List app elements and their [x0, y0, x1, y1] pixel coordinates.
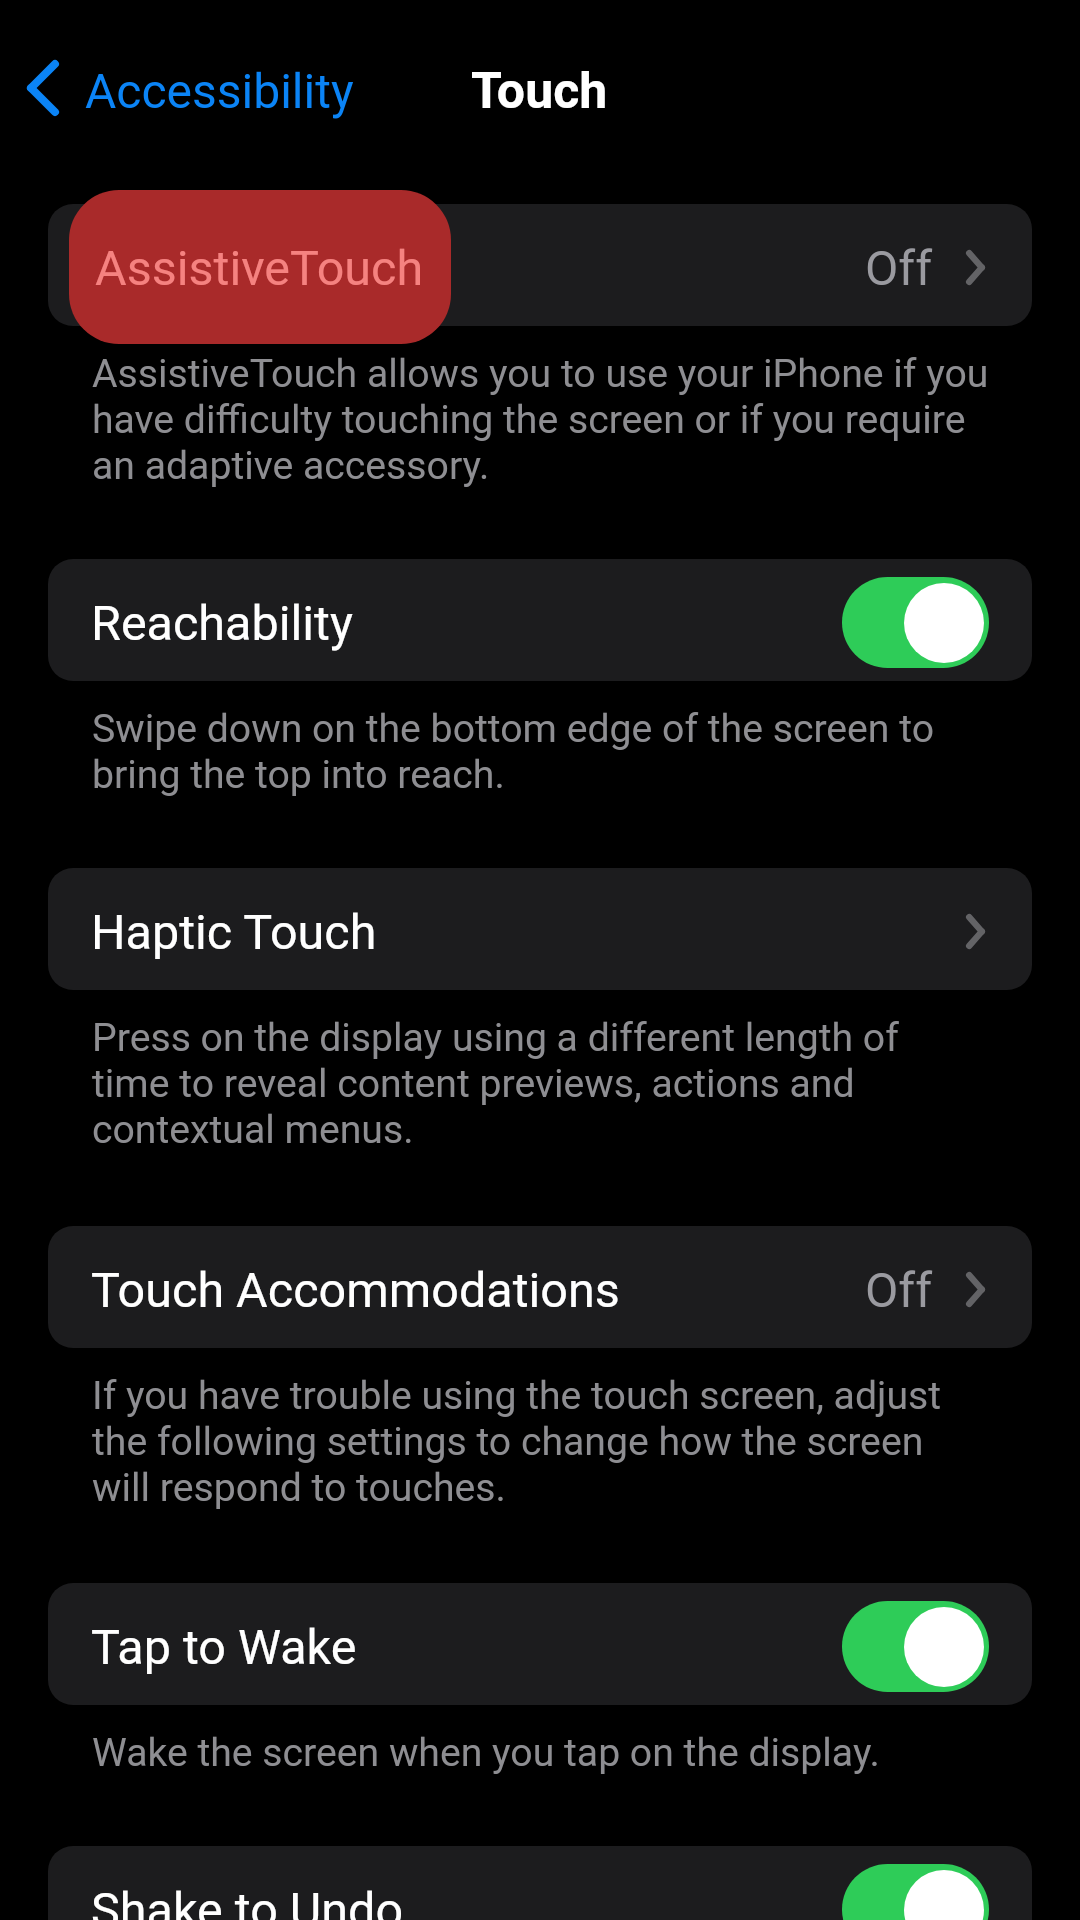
staticText: Reachability: [91, 595, 353, 652]
staticText: Touch: [471, 62, 608, 121]
button[interactable]: Shake to Undo: [48, 1846, 1032, 1920]
staticText: Swipe down on the bottom edge of the scr…: [92, 706, 935, 798]
staticText: Shake to Undo: [91, 1882, 404, 1920]
staticText: AssistiveTouch: [91, 240, 420, 297]
staticText: If you have trouble using the touch scre…: [92, 1373, 942, 1511]
staticText: Wake the screen when you tap on the disp…: [92, 1730, 880, 1776]
staticText: AssistiveTouch: [95, 240, 424, 297]
staticText: AssistiveTouch allows you to use your iP…: [92, 351, 989, 489]
button[interactable]: AssistiveTouch: [48, 204, 1032, 326]
staticText: Tap to Wake: [91, 1619, 357, 1676]
button[interactable]: Reachability: [48, 559, 1032, 681]
button[interactable]: Toggle, on: [842, 577, 989, 668]
staticText: Press on the display using a different l…: [92, 1015, 899, 1153]
staticText: Accessibility: [85, 63, 354, 119]
button[interactable]: Toggle, on: [842, 1864, 989, 1920]
staticText: Off: [865, 240, 933, 297]
button[interactable]: AssistiveTouch: [69, 190, 451, 344]
button[interactable]: Back: [27, 42, 354, 134]
button[interactable]: Touch Accommodations: [48, 1226, 1032, 1348]
button[interactable]: Tap to Wake: [48, 1583, 1032, 1705]
other: Back: [27, 60, 59, 116]
staticText: Touch Accommodations: [91, 1262, 620, 1319]
button[interactable]: Haptic Touch: [48, 868, 1032, 990]
staticText: Haptic Touch: [91, 904, 377, 961]
staticText: Off: [865, 1262, 933, 1319]
button[interactable]: Toggle, on: [842, 1601, 989, 1692]
